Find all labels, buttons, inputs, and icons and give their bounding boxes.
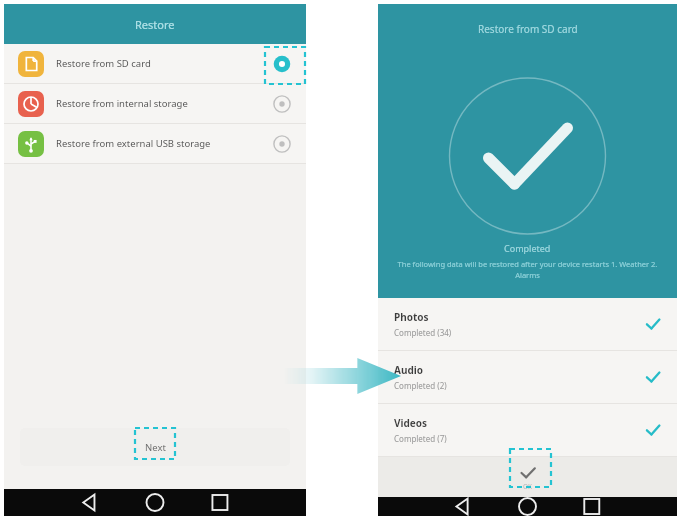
staticText: Audio	[394, 363, 423, 377]
staticText: The following data will be restored afte…	[386, 259, 669, 280]
button[interactable]: Restore from external USB storage	[4, 124, 306, 163]
button[interactable]: Restore from internal storage	[4, 84, 306, 123]
staticText: Restore	[135, 17, 175, 32]
staticText: Restore from SD card	[56, 57, 151, 70]
button[interactable]: Photos	[378, 298, 677, 350]
staticText: Completed (34)	[394, 327, 452, 338]
staticText: Videos	[394, 416, 428, 430]
staticText: Restore from SD card	[478, 22, 578, 36]
staticText: OK	[523, 482, 533, 491]
button[interactable]: OK	[378, 457, 677, 497]
staticText: Completed (7)	[394, 433, 447, 444]
staticText: Restore from external USB storage	[56, 137, 211, 150]
staticText: Restore from internal storage	[56, 97, 188, 110]
staticText: Photos	[394, 310, 429, 324]
staticText: Completed	[504, 242, 551, 254]
button[interactable]: Audio	[378, 351, 677, 403]
staticText: Completed (2)	[394, 380, 447, 391]
button[interactable]: Next	[20, 428, 290, 466]
staticText: Next	[145, 441, 166, 454]
button[interactable]: Videos	[378, 404, 677, 456]
button[interactable]: Restore from SD card	[4, 44, 306, 83]
